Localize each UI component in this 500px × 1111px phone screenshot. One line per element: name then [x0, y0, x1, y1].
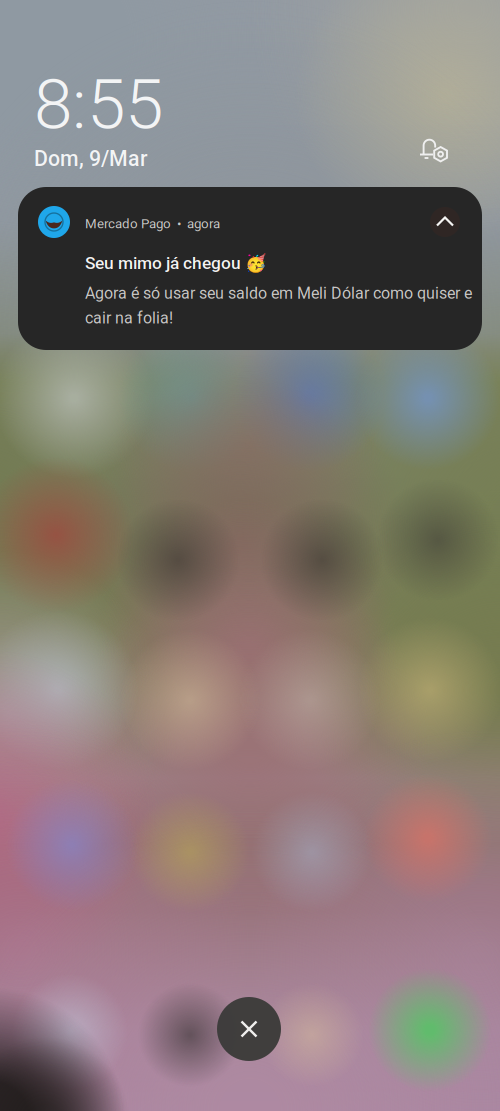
button[interactable]: Notification settings [412, 128, 460, 174]
button[interactable]: Mercado Pago • agora [18, 187, 482, 350]
button[interactable]: Dismiss notifications [217, 997, 281, 1061]
staticText: Dom, 9/Mar [34, 146, 148, 171]
staticText: 8:55 [34, 64, 163, 145]
staticText: Seu mimo já chegou 🥳 [85, 253, 267, 273]
staticText: Mercado Pago • agora [85, 216, 220, 232]
button[interactable]: Collapse notification [430, 207, 460, 237]
staticText: Agora é só usar seu saldo em Meli Dólar … [85, 284, 472, 327]
